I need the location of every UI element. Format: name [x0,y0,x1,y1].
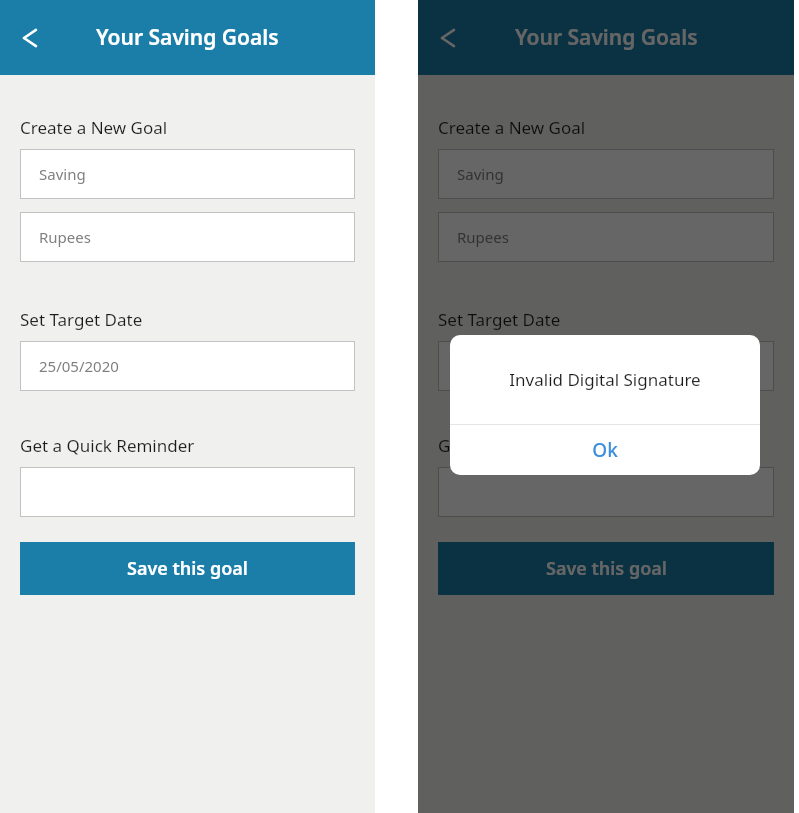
button[interactable]: Back [426,16,470,60]
button[interactable]: Rupees [438,212,774,262]
button[interactable]: Ok [450,425,760,475]
button[interactable]: 25/05/2020 [438,341,774,391]
staticText: Save this goal [546,556,667,581]
button[interactable]: Saving [20,149,355,199]
staticText: Your Saving Goals [515,23,698,52]
staticText: Saving [457,164,504,184]
staticText: Your Saving Goals [96,23,279,52]
staticText: Rupees [39,227,91,247]
staticText: Set Target Date [20,308,143,331]
button[interactable]: Save this goal [438,542,774,595]
staticText: Invalid Digital Signature [450,368,760,391]
staticText: Rupees [457,227,509,247]
staticText: Get a Quick Reminder [438,434,613,457]
staticText: 25/05/2020 [39,356,119,376]
staticText: Save this goal [127,556,248,581]
button[interactable]: Save this goal [20,542,355,595]
button[interactable] [438,467,774,517]
button[interactable] [20,467,355,517]
button[interactable]: 25/05/2020 [20,341,355,391]
staticText: Get a Quick Reminder [20,434,195,457]
button[interactable]: Rupees [20,212,355,262]
button[interactable]: Saving [438,149,774,199]
staticText: Set Target Date [438,308,561,331]
staticText: 25/05/2020 [457,356,537,376]
button[interactable] [418,0,794,813]
staticText: Saving [39,164,86,184]
staticText: Create a New Goal [438,116,586,139]
staticText: Ok [450,437,760,463]
staticText: Create a New Goal [20,116,168,139]
button[interactable]: Back [8,16,52,60]
